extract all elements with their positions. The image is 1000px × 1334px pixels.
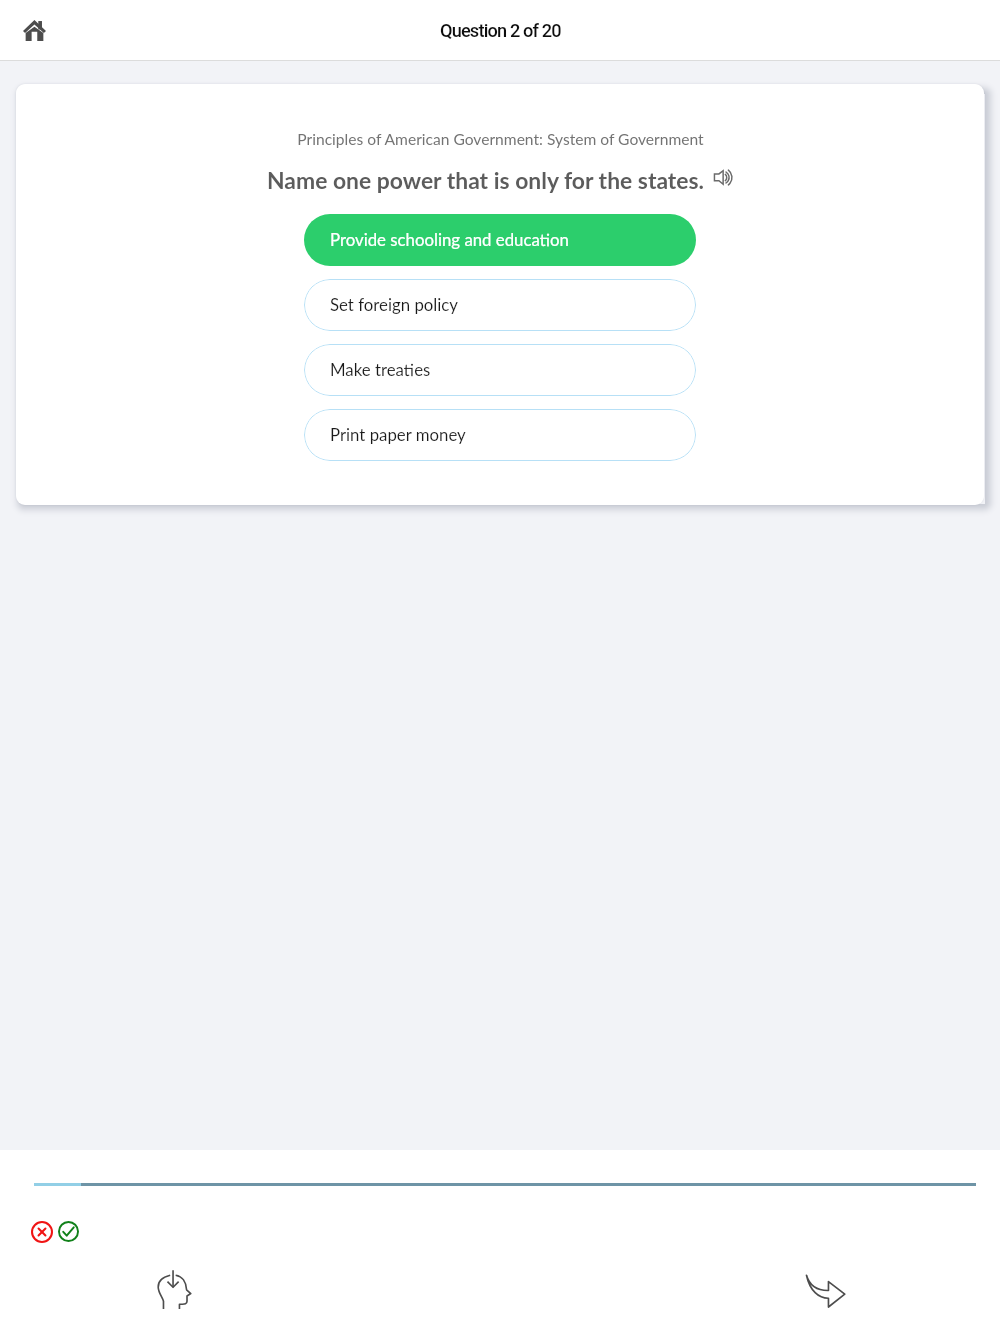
staticText: Principles of American Government: Syste… <box>297 130 704 149</box>
button[interactable]: Make treaties <box>304 344 696 396</box>
button[interactable]: Listen <box>709 165 737 189</box>
staticText: Make treaties <box>330 359 431 379</box>
button[interactable]: Print paper money <box>304 409 696 461</box>
staticText: Name one power that is only for the stat… <box>267 166 705 193</box>
staticText: Set foreign policy <box>330 294 459 314</box>
staticText: Provide schooling and education <box>330 229 569 249</box>
staticText: Print paper money <box>330 424 466 444</box>
button[interactable]: Home <box>12 9 57 52</box>
button[interactable]: Set foreign policy <box>304 279 696 331</box>
staticText: Question 2 of 20 <box>440 20 561 41</box>
button[interactable]: Provide schooling and education <box>304 214 696 266</box>
button[interactable]: Skip <box>803 1269 847 1313</box>
button[interactable]: Memorize <box>152 1267 196 1311</box>
